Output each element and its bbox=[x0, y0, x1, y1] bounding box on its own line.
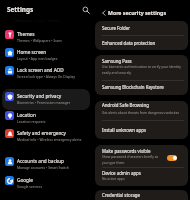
staticText: Location bbox=[17, 112, 36, 118]
button[interactable]: Home screen bbox=[2, 44, 90, 61]
staticText: Make passwords visible bbox=[102, 148, 151, 154]
button[interactable]: Device admin apps bbox=[95, 167, 188, 186]
staticText: Medical info • Wireless emergency alerts bbox=[17, 137, 82, 142]
button[interactable]: Samsung Blockchain Keystore bbox=[95, 80, 188, 95]
staticText: Layout • App icon badges bbox=[17, 56, 58, 61]
button[interactable]: Search bbox=[81, 5, 91, 15]
staticText: Secure Folder bbox=[102, 25, 131, 31]
staticText: Enhanced data protection bbox=[102, 40, 156, 46]
button[interactable]: Accounts and backup bbox=[2, 153, 90, 170]
button[interactable]: Credential storage bbox=[95, 190, 188, 200]
staticText: No active apps bbox=[102, 176, 125, 180]
staticText: Screen lock type • Always On Display bbox=[17, 74, 75, 79]
button[interactable]: Make passwords visible bbox=[95, 145, 188, 167]
staticText: Safety and emergency bbox=[17, 130, 67, 136]
staticText: More security settings bbox=[108, 9, 166, 16]
button[interactable]: Enhanced data protection bbox=[95, 35, 188, 50]
staticText: Biometrics • Permission manager bbox=[17, 100, 71, 105]
staticText: Install unknown apps bbox=[102, 127, 147, 133]
button[interactable]: Android Safe Browsing bbox=[95, 101, 188, 120]
staticText: Google services bbox=[17, 184, 43, 189]
staticText: Credential storage bbox=[102, 192, 141, 198]
button[interactable]: Safety and emergency bbox=[2, 125, 90, 142]
staticText: Google bbox=[17, 177, 33, 183]
staticText: Samsung Pass bbox=[102, 58, 132, 64]
button[interactable]: Location bbox=[2, 107, 90, 124]
button[interactable]: Lock screen and AOD bbox=[2, 62, 90, 79]
staticText: Lock screen and AOD bbox=[17, 67, 64, 73]
staticText: Security and privacy bbox=[17, 93, 62, 99]
button[interactable]: Make passwords visible bbox=[167, 155, 177, 161]
button[interactable]: Install unknown apps bbox=[95, 120, 188, 139]
staticText: Accounts and backup bbox=[17, 158, 64, 164]
staticText: Settings bbox=[7, 5, 34, 14]
staticText: Device admin apps bbox=[102, 170, 141, 176]
button[interactable]: Samsung Pass bbox=[95, 55, 188, 80]
staticText: Manage accounts • Smart Switch bbox=[17, 165, 69, 170]
staticText: Get alerts about threats from dangerous … bbox=[102, 110, 180, 114]
staticText: Location requests bbox=[17, 119, 46, 124]
button[interactable]: Security and privacy bbox=[2, 88, 90, 105]
staticText: Themes bbox=[17, 31, 35, 37]
button[interactable]: Google bbox=[2, 172, 90, 189]
staticText: Home screen bbox=[17, 49, 47, 55]
button[interactable]: Back bbox=[99, 8, 108, 17]
button[interactable]: Secure Folder bbox=[95, 21, 188, 35]
staticText: Use biometric authentication to verify y… bbox=[102, 64, 188, 75]
staticText: Themes • Wallpapers • Icons bbox=[17, 38, 62, 43]
staticText: Android Safe Browsing bbox=[102, 102, 149, 108]
button[interactable]: Themes bbox=[2, 26, 90, 43]
staticText: Show password characters briefly as you … bbox=[102, 154, 164, 165]
staticText: Samsung Blockchain Keystore bbox=[102, 84, 164, 90]
